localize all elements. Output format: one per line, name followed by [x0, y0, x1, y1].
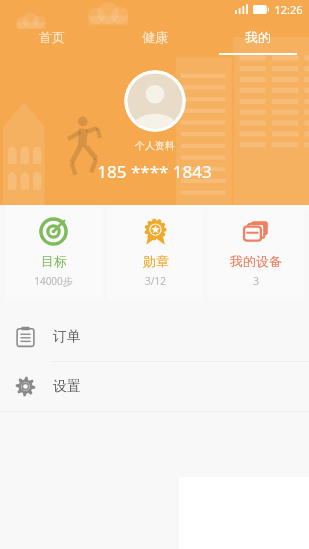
button[interactable]: 目标	[5, 205, 102, 300]
staticText: 12:26	[274, 2, 303, 17]
button[interactable]: 首页	[0, 18, 103, 56]
staticText: 首页	[39, 29, 65, 45]
staticText: 3	[253, 274, 259, 288]
button[interactable]: 我的	[206, 18, 309, 56]
staticText: 我的设备	[230, 253, 282, 269]
staticText: 14000步	[34, 274, 73, 288]
button[interactable]: 健康	[103, 18, 206, 56]
button[interactable]: Orders	[0, 312, 309, 361]
staticText: 健康	[142, 29, 168, 45]
staticText: 3/12	[145, 274, 166, 288]
staticText: 设置	[53, 378, 81, 396]
staticText: 勋章	[143, 253, 169, 269]
button[interactable]: Profile avatar	[124, 70, 186, 132]
button[interactable]: 勋章	[107, 205, 203, 300]
staticText: 个人资料	[135, 139, 175, 152]
staticText: 185 **** 1843	[97, 160, 212, 183]
staticText: 我的	[245, 29, 271, 45]
button[interactable]: 我的设备	[208, 205, 304, 300]
button[interactable]: Settings	[0, 362, 309, 411]
other: Orders	[15, 326, 36, 347]
other: Settings	[15, 376, 36, 397]
staticText: 目标	[41, 253, 67, 269]
staticText: 订单	[53, 328, 81, 346]
